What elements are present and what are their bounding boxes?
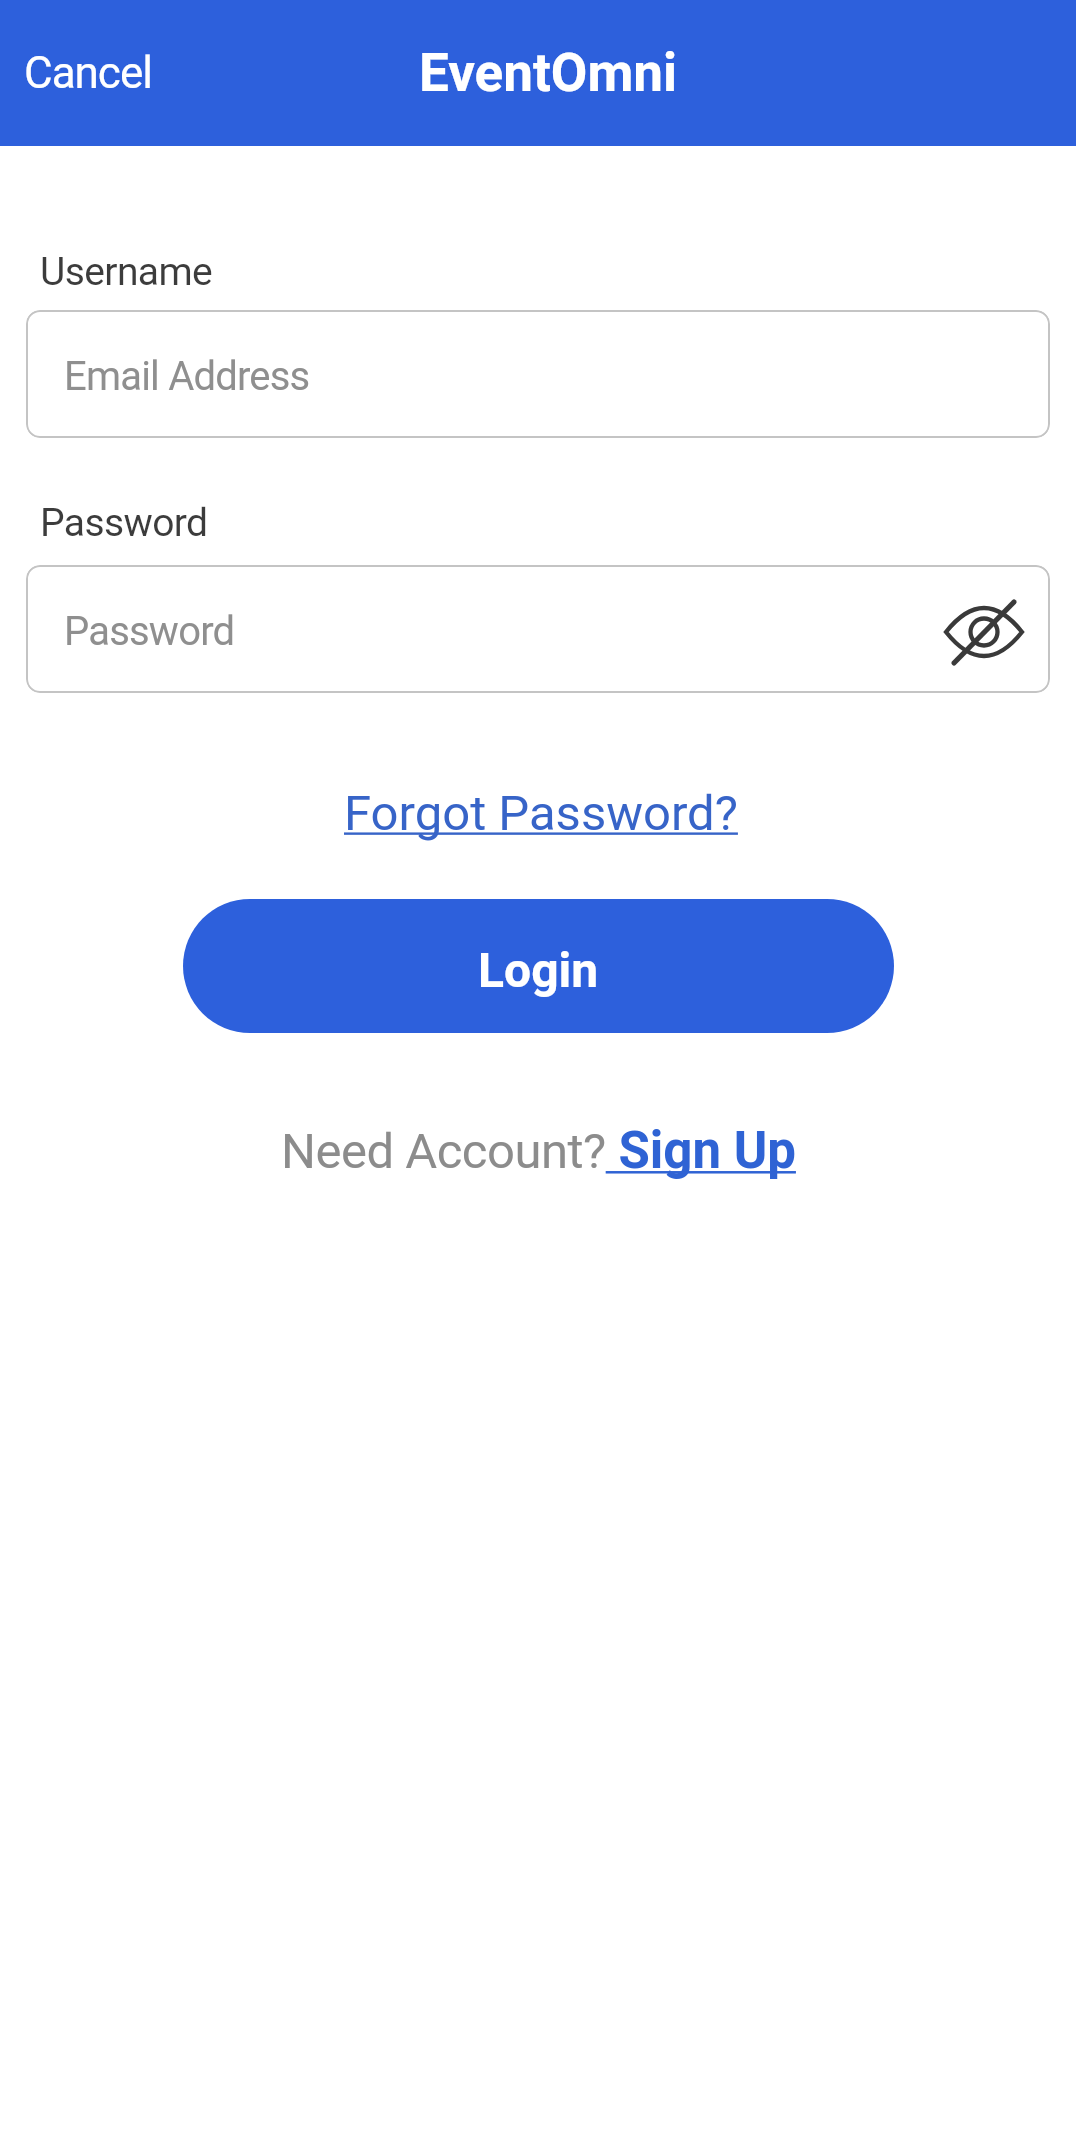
staticText: Need Account? Sign Up [281, 1121, 796, 1181]
button[interactable] [944, 600, 1024, 664]
button[interactable]: Need Account? Sign Up [281, 1121, 796, 1181]
staticText: Username [40, 249, 213, 295]
staticText: EventOmni [419, 42, 678, 104]
button[interactable]: Cancel [12, 37, 164, 109]
staticText: Password [64, 608, 235, 655]
staticText: Login [478, 942, 599, 998]
button[interactable]: Email Address [26, 310, 1050, 438]
staticText: Forgot Password? [344, 785, 738, 842]
button[interactable]: Login [183, 899, 894, 1033]
staticText: Email Address [64, 353, 310, 400]
button[interactable]: Forgot Password? [344, 785, 738, 842]
button[interactable]: Password [26, 565, 1050, 693]
staticText: Password [40, 500, 208, 546]
staticText: Cancel [24, 47, 152, 99]
